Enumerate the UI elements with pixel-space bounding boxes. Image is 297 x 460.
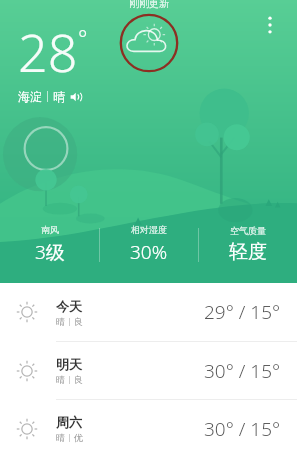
staticText: 良: [74, 374, 83, 385]
staticText: 28: [18, 16, 78, 87]
staticText: 3级: [35, 239, 65, 265]
staticText: 轻度: [229, 240, 267, 264]
staticText: 30° / 15°: [204, 416, 281, 442]
staticText: 空气质量: [230, 225, 266, 236]
staticText: 周六: [56, 414, 82, 430]
staticText: 优: [74, 432, 83, 443]
other: Play weather audio: [70, 91, 82, 103]
button[interactable]: 相对湿度: [100, 224, 198, 265]
button[interactable]: 明天: [0, 341, 297, 399]
staticText: 30%: [130, 239, 168, 265]
staticText: 晴: [56, 432, 65, 443]
staticText: 刚刚更新: [129, 0, 169, 9]
staticText: 明天: [56, 356, 82, 372]
button[interactable]: 空气质量: [199, 225, 297, 264]
button[interactable]: More options: [257, 12, 283, 38]
button[interactable]: 今天: [0, 283, 297, 341]
button[interactable]: Current weather: partly cloudy: [118, 12, 180, 74]
staticText: 晴: [53, 89, 65, 104]
staticText: 相对湿度: [131, 224, 167, 235]
staticText: 良: [74, 316, 83, 327]
button[interactable]: 南风: [0, 224, 99, 265]
staticText: 30° / 15°: [204, 358, 281, 384]
staticText: 晴: [56, 316, 65, 327]
staticText: °: [78, 22, 88, 52]
button[interactable]: 海淀: [18, 89, 82, 104]
staticText: 晴: [56, 374, 65, 385]
button[interactable]: 周六: [0, 399, 297, 457]
staticText: 今天: [56, 298, 82, 314]
staticText: 海淀: [18, 89, 42, 104]
staticText: 南风: [41, 224, 59, 235]
staticText: 29° / 15°: [204, 299, 281, 325]
